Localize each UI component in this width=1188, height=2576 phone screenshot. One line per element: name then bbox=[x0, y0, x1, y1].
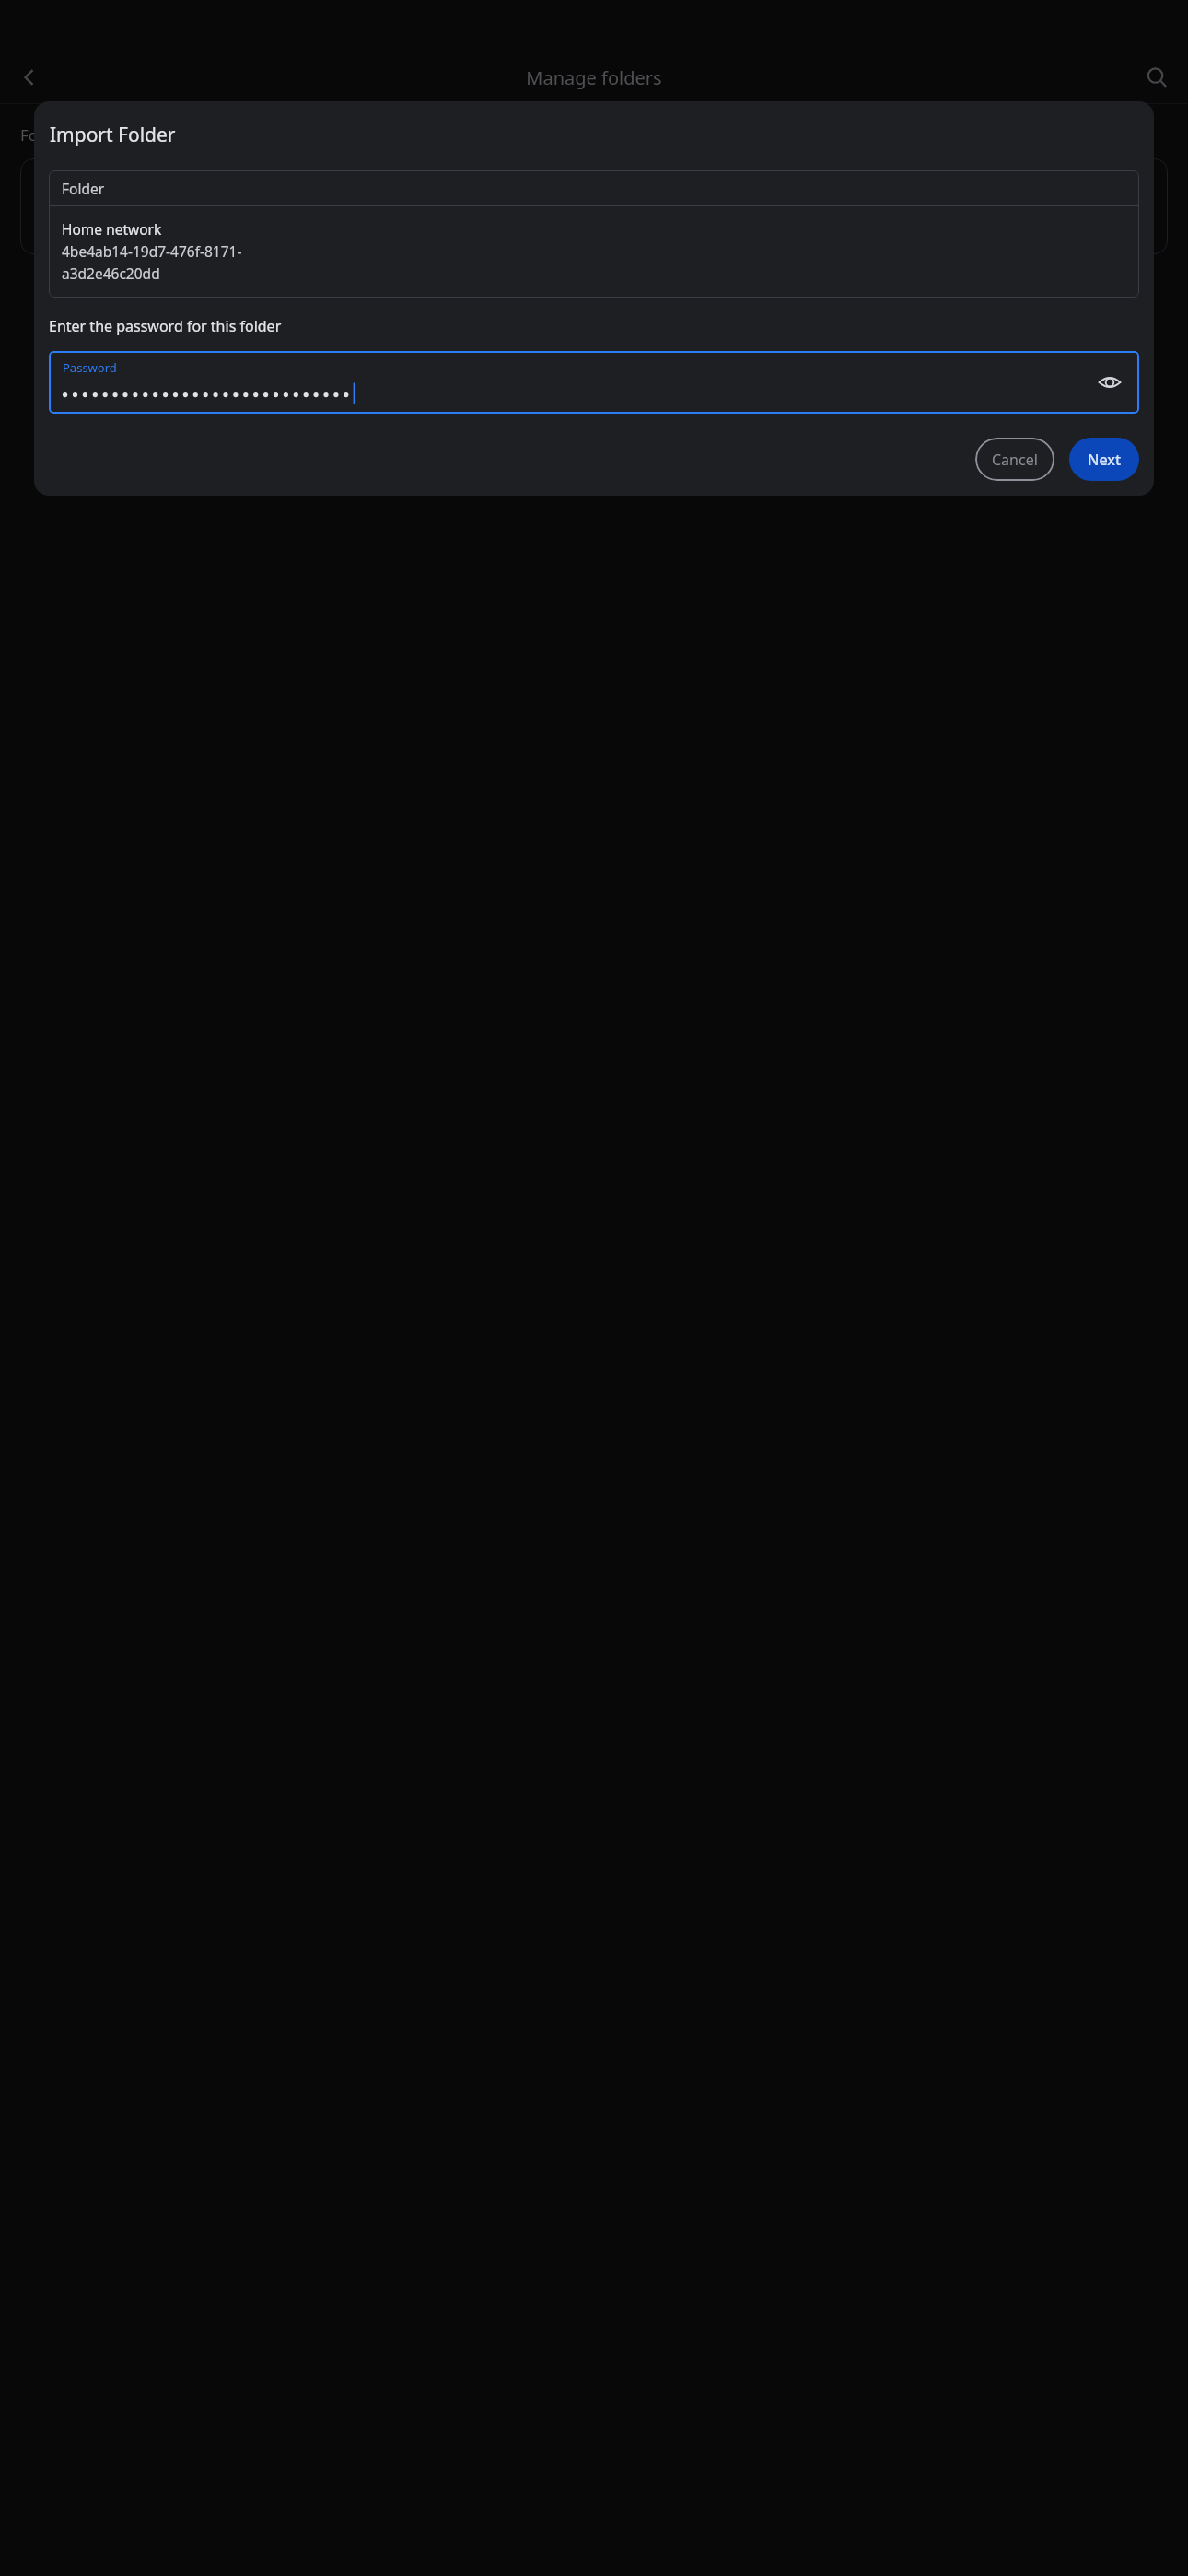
staticText: Next bbox=[1088, 450, 1122, 470]
button[interactable]: Next bbox=[1069, 438, 1139, 481]
staticText: Import Folder bbox=[50, 122, 176, 148]
button[interactable]: Search bbox=[1135, 55, 1179, 100]
button[interactable]: Cancel bbox=[975, 438, 1054, 481]
staticText: a3d2e46c20dd bbox=[62, 263, 160, 283]
button[interactable] bbox=[20, 158, 1168, 254]
staticText: 4be4ab14-19d7-476f-8171- bbox=[62, 241, 242, 261]
staticText: Password bbox=[63, 359, 117, 376]
staticText: Enter the password for this folder bbox=[49, 316, 282, 336]
button[interactable]: Back bbox=[7, 55, 52, 100]
staticText: Folder bbox=[62, 179, 105, 198]
staticText: Manage folders bbox=[526, 65, 662, 90]
button[interactable]: Show password bbox=[1089, 362, 1130, 403]
button[interactable]: Add folder bbox=[263, 195, 320, 252]
staticText: Folders bbox=[20, 124, 75, 146]
staticText: Cancel bbox=[992, 450, 1038, 470]
button[interactable]: Password bbox=[49, 351, 1139, 414]
staticText: Home network bbox=[62, 219, 162, 239]
